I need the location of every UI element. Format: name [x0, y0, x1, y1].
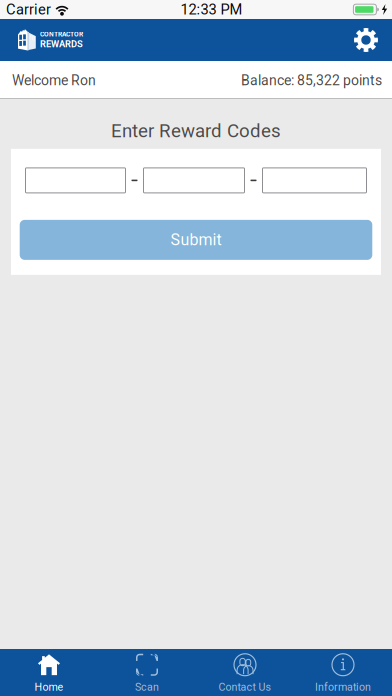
- staticText: Home: [34, 681, 63, 693]
- button[interactable]: Scan: [98, 647, 196, 696]
- button[interactable]: Contact Us: [196, 647, 294, 696]
- button[interactable]: Submit: [20, 220, 372, 260]
- staticText: Contact Us: [218, 681, 271, 693]
- staticText: REWARDS: [40, 39, 83, 50]
- staticText: Balance: 85,322 points: [241, 72, 382, 89]
- staticText: Welcome Ron: [12, 72, 96, 89]
- staticText: Submit: [170, 230, 221, 249]
- button[interactable]: Home: [0, 647, 98, 696]
- button[interactable]: Settings: [350, 24, 382, 56]
- button[interactable]: Information: [294, 647, 392, 696]
- staticText: CONTRACTOR: [40, 30, 83, 38]
- staticText: Information: [315, 681, 371, 693]
- staticText: Scan: [135, 681, 159, 693]
- staticText: Enter Reward Codes: [111, 120, 281, 142]
- staticText: 12:33 PM: [180, 1, 242, 18]
- staticText: Carrier: [6, 1, 51, 18]
